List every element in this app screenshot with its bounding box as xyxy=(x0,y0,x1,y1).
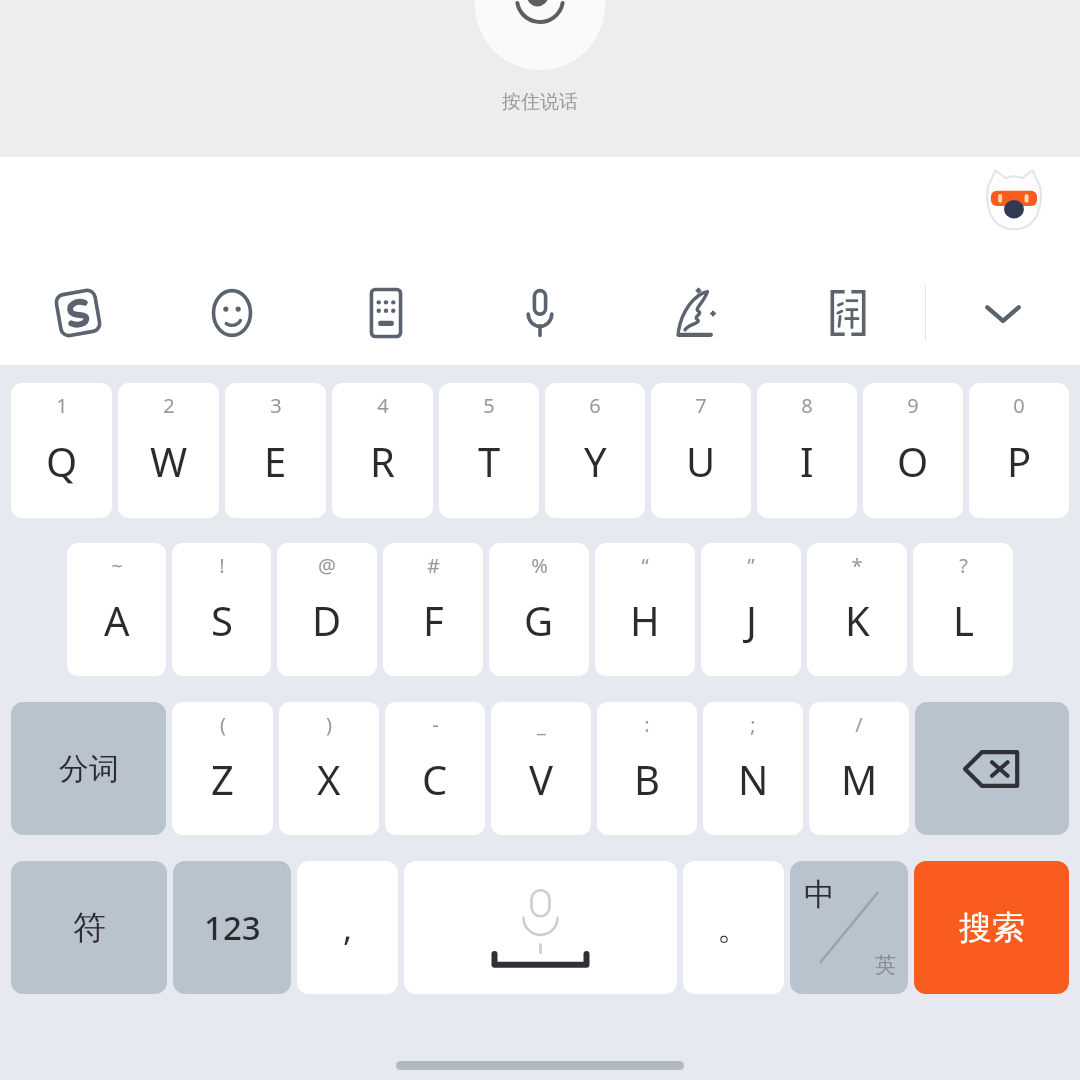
staticText: 3 xyxy=(270,392,282,419)
button[interactable]: Sogou xyxy=(0,260,155,365)
button[interactable]: 1 xyxy=(11,383,112,518)
staticText: B xyxy=(634,752,660,806)
staticText: K xyxy=(845,593,870,647)
staticText: M xyxy=(841,752,878,806)
staticText: 5 xyxy=(483,392,495,419)
staticText: “ xyxy=(641,552,649,579)
button[interactable]: 。 xyxy=(683,861,784,994)
button[interactable]: Assistant avatar xyxy=(981,167,1047,233)
staticText: ” xyxy=(747,552,755,579)
staticText: _ xyxy=(537,711,546,738)
staticText: 9 xyxy=(907,392,919,419)
button[interactable]: ” xyxy=(701,543,801,676)
staticText: 6 xyxy=(589,392,601,419)
staticText: ~ xyxy=(111,552,123,579)
staticText: C xyxy=(422,752,448,806)
button[interactable]: 5 xyxy=(439,383,539,518)
staticText: U xyxy=(686,434,716,488)
button[interactable]: 123 xyxy=(173,861,291,994)
staticText: Y xyxy=(584,434,607,488)
staticText: ! xyxy=(219,552,225,579)
staticText: ? xyxy=(959,552,968,579)
staticText: 英 xyxy=(875,952,896,978)
staticText: N xyxy=(738,752,769,806)
button[interactable]: Translate xyxy=(771,260,925,365)
button[interactable]: 7 xyxy=(651,383,751,518)
button[interactable]: - xyxy=(385,702,485,835)
staticText: 2 xyxy=(163,392,175,419)
button[interactable]: ( xyxy=(172,702,273,835)
button[interactable]: Keyboard layout xyxy=(309,260,463,365)
staticText: @ xyxy=(318,552,336,579)
button[interactable]: 分词 xyxy=(11,702,166,835)
button[interactable]: % xyxy=(489,543,589,676)
button[interactable]: Handwriting xyxy=(617,260,771,365)
button[interactable]: 6 xyxy=(545,383,645,518)
staticText: 中 xyxy=(804,875,835,914)
staticText: G xyxy=(524,593,554,647)
button[interactable]: 0 xyxy=(969,383,1069,518)
staticText: * xyxy=(851,552,863,579)
button[interactable]: 符 xyxy=(11,861,167,994)
button[interactable]: * xyxy=(807,543,907,676)
button[interactable]: _ xyxy=(491,702,591,835)
staticText: , xyxy=(343,905,353,951)
staticText: 搜索 xyxy=(959,907,1025,949)
button[interactable]: Chinese English toggle xyxy=(790,861,908,994)
staticText: ( xyxy=(220,711,226,738)
button[interactable]: @ xyxy=(277,543,377,676)
button[interactable]: ) xyxy=(279,702,379,835)
staticText: P xyxy=(1007,434,1032,488)
button[interactable]: 9 xyxy=(863,383,963,518)
staticText: 按住说话 xyxy=(502,90,578,114)
button[interactable]: : xyxy=(597,702,697,835)
button[interactable]: 8 xyxy=(757,383,857,518)
staticText: R xyxy=(370,434,395,488)
staticText: A xyxy=(104,593,130,647)
button[interactable]: / xyxy=(809,702,909,835)
button[interactable]: Space xyxy=(404,861,677,994)
button[interactable]: ; xyxy=(703,702,803,835)
staticText: 123 xyxy=(204,905,261,950)
button[interactable]: ~ xyxy=(67,543,166,676)
staticText: 0 xyxy=(1013,392,1025,419)
staticText: H xyxy=(630,593,660,647)
staticText: 4 xyxy=(377,392,389,419)
staticText: : xyxy=(644,711,650,738)
staticText: F xyxy=(423,593,444,647)
staticText: O xyxy=(897,434,929,488)
staticText: 符 xyxy=(73,907,106,949)
staticText: V xyxy=(529,752,553,806)
button[interactable]: 3 xyxy=(225,383,326,518)
staticText: # xyxy=(427,552,440,579)
button[interactable]: 搜索 xyxy=(914,861,1069,994)
button[interactable]: 2 xyxy=(118,383,219,518)
staticText: 8 xyxy=(801,392,813,419)
staticText: E xyxy=(264,434,287,488)
button[interactable]: , xyxy=(297,861,398,994)
button[interactable]: Hide keyboard xyxy=(926,260,1080,365)
staticText: 分词 xyxy=(59,750,119,788)
button[interactable]: “ xyxy=(595,543,695,676)
staticText: 7 xyxy=(695,392,707,419)
staticText: / xyxy=(855,711,863,738)
button[interactable]: # xyxy=(383,543,483,676)
staticText: S xyxy=(211,593,233,647)
button[interactable]: Voice input xyxy=(463,260,617,365)
button[interactable]: Emoji xyxy=(155,260,309,365)
staticText: Q xyxy=(46,434,78,488)
staticText: D xyxy=(312,593,342,647)
staticText: % xyxy=(531,552,548,579)
staticText: T xyxy=(478,434,501,488)
staticText: J xyxy=(746,593,757,647)
staticText: 1 xyxy=(56,392,68,419)
staticText: 。 xyxy=(717,906,751,949)
button[interactable]: 4 xyxy=(332,383,433,518)
staticText: L xyxy=(953,593,974,647)
button[interactable]: ? xyxy=(913,543,1013,676)
staticText: Z xyxy=(211,752,234,806)
staticText: - xyxy=(432,711,439,738)
button[interactable]: ! xyxy=(172,543,271,676)
button[interactable]: Backspace xyxy=(915,702,1069,835)
staticText: X xyxy=(317,752,341,806)
